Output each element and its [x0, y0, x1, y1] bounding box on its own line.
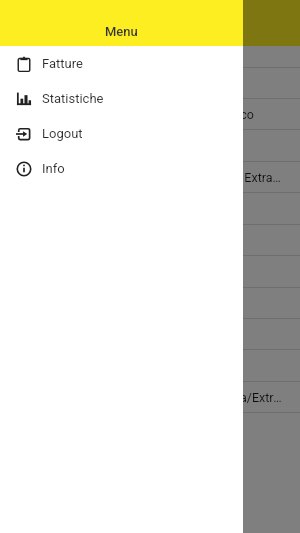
- button[interactable]: 2019/0018 - Bruni Sara: [0, 225, 300, 255]
- staticText: 2019/0016 - Gialli Luca / Lavori per Sed…: [16, 170, 287, 185]
- staticText: Menu: [105, 24, 138, 39]
- button[interactable]: 2019/0020 - Beta Spa: [0, 288, 300, 318]
- staticText: 2019/0023 - Ferri M. / Manutenzione Sala…: [16, 390, 287, 405]
- button[interactable]: Statistiche: [0, 81, 243, 116]
- button[interactable]: 2019/0019 - Alfa Srl: [0, 256, 300, 287]
- staticText: Logout: [42, 126, 83, 141]
- button[interactable]: 2019/0021 - Delta Snc: [0, 319, 300, 349]
- button[interactable]: 2019/0014 - Marini Impianto Termotecnico: [0, 99, 300, 129]
- staticText: 2019/0014 - Marini Impianto Termotecnico: [16, 107, 254, 122]
- button[interactable]: Info: [0, 151, 243, 186]
- button[interactable]: 2019/0016 - Gialli Luca / Lavori per Sed…: [0, 162, 300, 192]
- staticText: 2019/0012 - Rossi Mario: [16, 49, 154, 64]
- button[interactable]: Fatture: [0, 46, 243, 81]
- staticText: 2019/0015 - Verdi Anna: [16, 138, 148, 153]
- button[interactable]: Logout: [0, 116, 243, 151]
- staticText: Statistiche: [42, 91, 104, 106]
- staticText: Fatture: [42, 56, 83, 71]
- button[interactable]: 2019/0023 - Ferri M. / Manutenzione Sala…: [0, 382, 300, 412]
- button[interactable]: 2019/0015 - Verdi Anna: [0, 130, 300, 161]
- button[interactable]: 2019/0012 - Rossi Mario: [0, 46, 300, 67]
- button[interactable]: 2019/0013 - Bianchi Luigi: [0, 68, 300, 98]
- button[interactable]: 2019/0022 - Epsilon: [0, 350, 300, 381]
- staticText: Fatture: [129, 24, 171, 39]
- staticText: Info: [42, 161, 65, 176]
- button[interactable]: 2019/0017 - Neri Paolo: [0, 193, 300, 224]
